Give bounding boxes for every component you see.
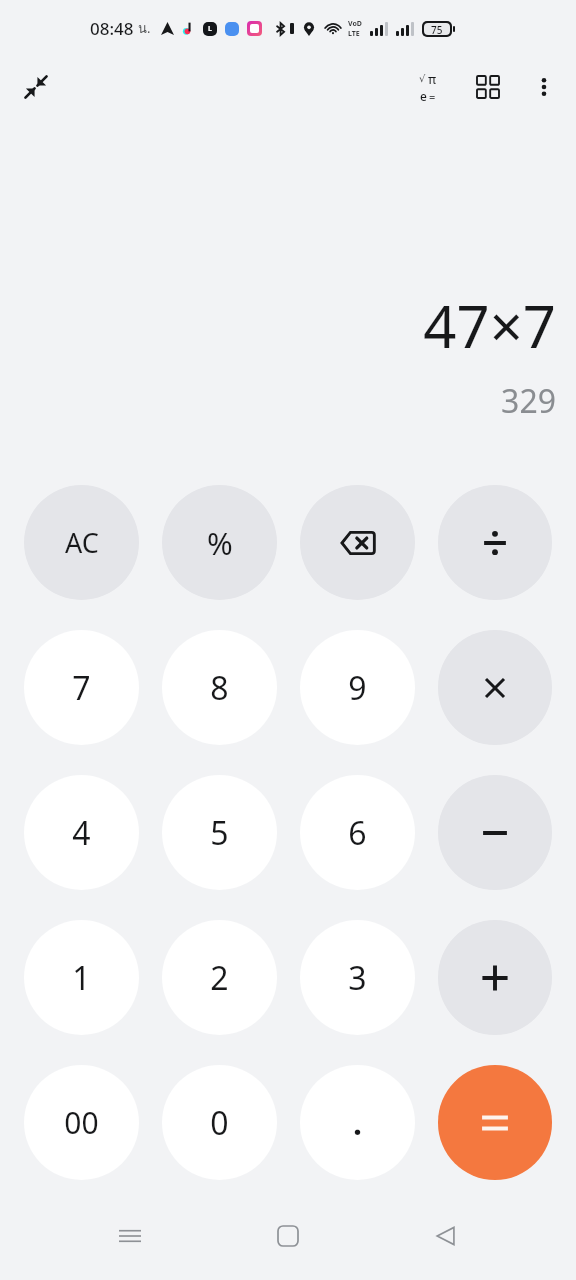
button[interactable]: Backspace: [300, 485, 415, 600]
staticText: 7: [72, 666, 91, 710]
staticText: 8: [210, 666, 229, 710]
staticText: 08:48: [90, 17, 134, 40]
button[interactable]: .: [300, 1065, 415, 1180]
staticText: %: [207, 522, 233, 564]
button[interactable]: Multiply: [438, 630, 552, 745]
button[interactable]: 4: [24, 775, 139, 890]
staticText: √: [419, 73, 426, 85]
staticText: L: [208, 24, 212, 34]
button[interactable]: Unit converter: [464, 63, 512, 111]
staticText: 00: [64, 1102, 99, 1143]
staticText: LTE: [348, 29, 360, 39]
button[interactable]: More options: [520, 63, 568, 111]
staticText: 0: [210, 1101, 229, 1145]
button[interactable]: Back: [418, 1208, 474, 1264]
button[interactable]: Collapse: [12, 63, 60, 111]
staticText: =: [429, 89, 436, 104]
staticText: 1: [72, 956, 91, 1000]
staticText: 75: [431, 23, 443, 35]
staticText: 9: [348, 666, 367, 710]
button[interactable]: %: [162, 485, 277, 600]
button[interactable]: 8: [162, 630, 277, 745]
staticText: 329: [501, 379, 556, 423]
button[interactable]: AC: [24, 485, 139, 600]
button[interactable]: Scientific mode: [404, 63, 452, 111]
staticText: 2: [210, 956, 229, 1000]
button[interactable]: Recents: [102, 1208, 158, 1264]
button[interactable]: Divide: [438, 485, 552, 600]
staticText: 4: [72, 811, 91, 855]
staticText: 3: [348, 956, 367, 1000]
button[interactable]: 7: [24, 630, 139, 745]
button[interactable]: 3: [300, 920, 415, 1035]
staticText: 47×7: [423, 286, 556, 365]
button[interactable]: Add: [438, 920, 552, 1035]
button[interactable]: Subtract: [438, 775, 552, 890]
staticText: VoD: [348, 19, 362, 29]
button[interactable]: 2: [162, 920, 277, 1035]
staticText: AC: [65, 524, 99, 561]
staticText: 5: [210, 811, 229, 855]
staticText: 6: [348, 811, 367, 855]
staticText: น.: [138, 18, 151, 39]
button[interactable]: 5: [162, 775, 277, 890]
staticText: π: [428, 71, 437, 87]
button[interactable]: 1: [24, 920, 139, 1035]
button[interactable]: 00: [24, 1065, 139, 1180]
staticText: e: [420, 88, 427, 104]
staticText: .: [353, 1101, 362, 1145]
button[interactable]: 0: [162, 1065, 277, 1180]
button[interactable]: Home: [260, 1208, 316, 1264]
button[interactable]: 9: [300, 630, 415, 745]
button[interactable]: Equals: [438, 1065, 552, 1180]
button[interactable]: 6: [300, 775, 415, 890]
